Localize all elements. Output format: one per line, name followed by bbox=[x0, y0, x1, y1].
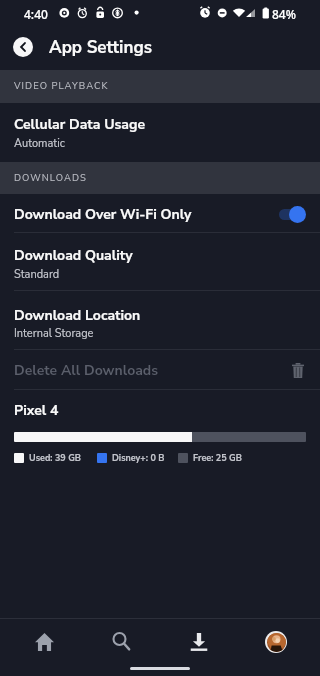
button[interactable]: Downloads bbox=[160, 619, 237, 664]
staticText: Pixel 4 bbox=[14, 401, 59, 420]
staticText: Cellular Data Usage bbox=[14, 115, 146, 134]
other: Delete all downloads bbox=[292, 363, 304, 378]
staticText: Disney+: 0 B bbox=[112, 452, 165, 464]
staticText: Download Quality bbox=[14, 246, 133, 265]
button[interactable]: Search bbox=[83, 619, 160, 664]
staticText: Used: 39 GB bbox=[29, 452, 82, 464]
staticText: Download Location bbox=[14, 306, 141, 325]
button[interactable]: Back bbox=[13, 37, 33, 57]
button[interactable]: Download Quality bbox=[0, 233, 320, 291]
staticText: VIDEO PLAYBACK bbox=[14, 79, 109, 92]
button[interactable]: Cellular Data Usage bbox=[0, 103, 320, 162]
staticText: Free: 25 GB bbox=[193, 452, 242, 464]
staticText: Delete All Downloads bbox=[14, 361, 159, 380]
button[interactable]: Profile bbox=[237, 619, 314, 664]
button[interactable]: Download Location bbox=[0, 291, 320, 350]
staticText: Standard bbox=[14, 267, 60, 282]
staticText: Download Over Wi-Fi Only bbox=[14, 205, 192, 224]
staticText: DOWNLOADS bbox=[14, 171, 87, 184]
button[interactable]: Download Over Wi-Fi Only bbox=[0, 194, 320, 233]
staticText: Automatic bbox=[14, 136, 65, 151]
staticText: 84% bbox=[272, 6, 296, 22]
staticText: 4:40 bbox=[24, 6, 48, 22]
button[interactable]: Download over Wi-Fi only bbox=[279, 204, 306, 224]
button[interactable]: Home bbox=[6, 619, 83, 664]
button[interactable]: Delete All Downloads bbox=[0, 350, 320, 390]
staticText: App Settings bbox=[49, 36, 152, 59]
staticText: Internal Storage bbox=[14, 326, 94, 341]
